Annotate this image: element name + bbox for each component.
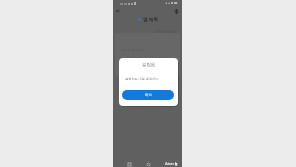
staticText: 확인: [145, 93, 152, 97]
staticText: 설명하는 내용 문장이다: [125, 77, 159, 81]
button[interactable]: Home: [144, 160, 152, 167]
staticText: 앱 제목: [143, 16, 158, 22]
staticText: 마지막 업데이: [155, 29, 177, 34]
button[interactable]: 확인: [122, 90, 174, 100]
staticText: Atan: [165, 161, 175, 167]
button[interactable]: 항목 이름 텍스트: [115, 33, 180, 77]
button[interactable]: More options: [171, 6, 181, 16]
button[interactable]: Recents: [125, 160, 133, 167]
staticText: 알림음: [142, 62, 156, 68]
button[interactable]: Back: [113, 6, 123, 16]
